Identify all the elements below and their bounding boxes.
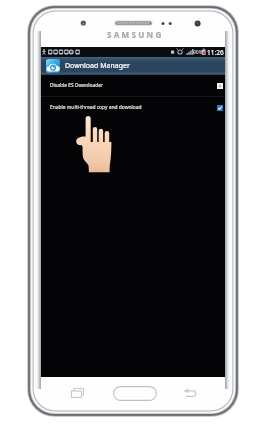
button[interactable]: Home bbox=[113, 386, 157, 401]
staticText: SAMSUNG bbox=[107, 29, 164, 40]
staticText: Enable multi-thread copy and download bbox=[50, 104, 217, 111]
staticText: Disable ES Downloader bbox=[50, 82, 217, 89]
button[interactable]: Disable ES Downloader bbox=[41, 75, 225, 96]
staticText: 90% bbox=[193, 49, 203, 56]
button[interactable]: Back bbox=[183, 387, 198, 399]
staticText: 11:26 bbox=[207, 48, 224, 57]
staticText: Download Manager bbox=[65, 61, 130, 71]
button[interactable]: Recent apps bbox=[70, 387, 86, 399]
button[interactable]: Enable multi-thread copy and download bbox=[41, 97, 225, 118]
